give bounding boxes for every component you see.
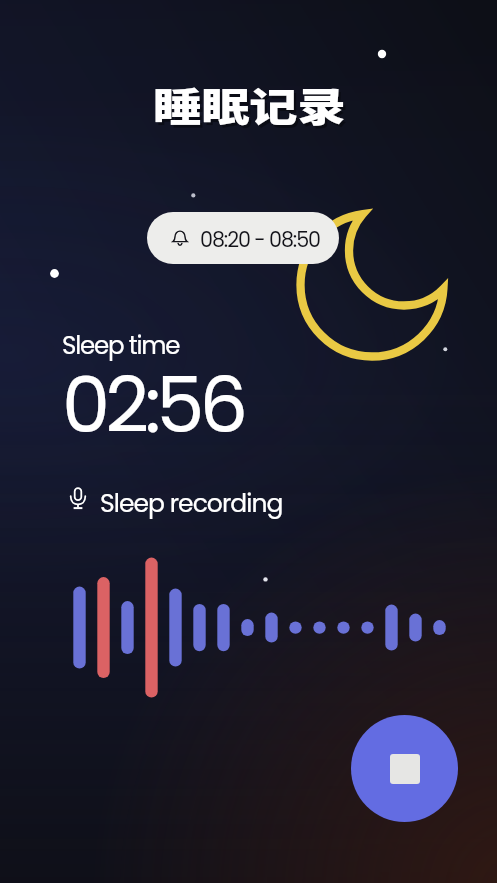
- button[interactable]: 08:20 - 08:50: [147, 212, 339, 264]
- staticText: Sleep time: [62, 328, 180, 362]
- button[interactable]: Sleep recording: [62, 486, 290, 520]
- staticText: 睡眠记录: [155, 79, 349, 135]
- staticText: 02:56: [62, 352, 244, 459]
- staticText: 睡眠记录: [153, 76, 347, 132]
- button[interactable]: Stop recording: [351, 715, 458, 822]
- staticText: Sleep recording: [100, 486, 283, 520]
- staticText: 08:20 - 08:50: [200, 225, 320, 254]
